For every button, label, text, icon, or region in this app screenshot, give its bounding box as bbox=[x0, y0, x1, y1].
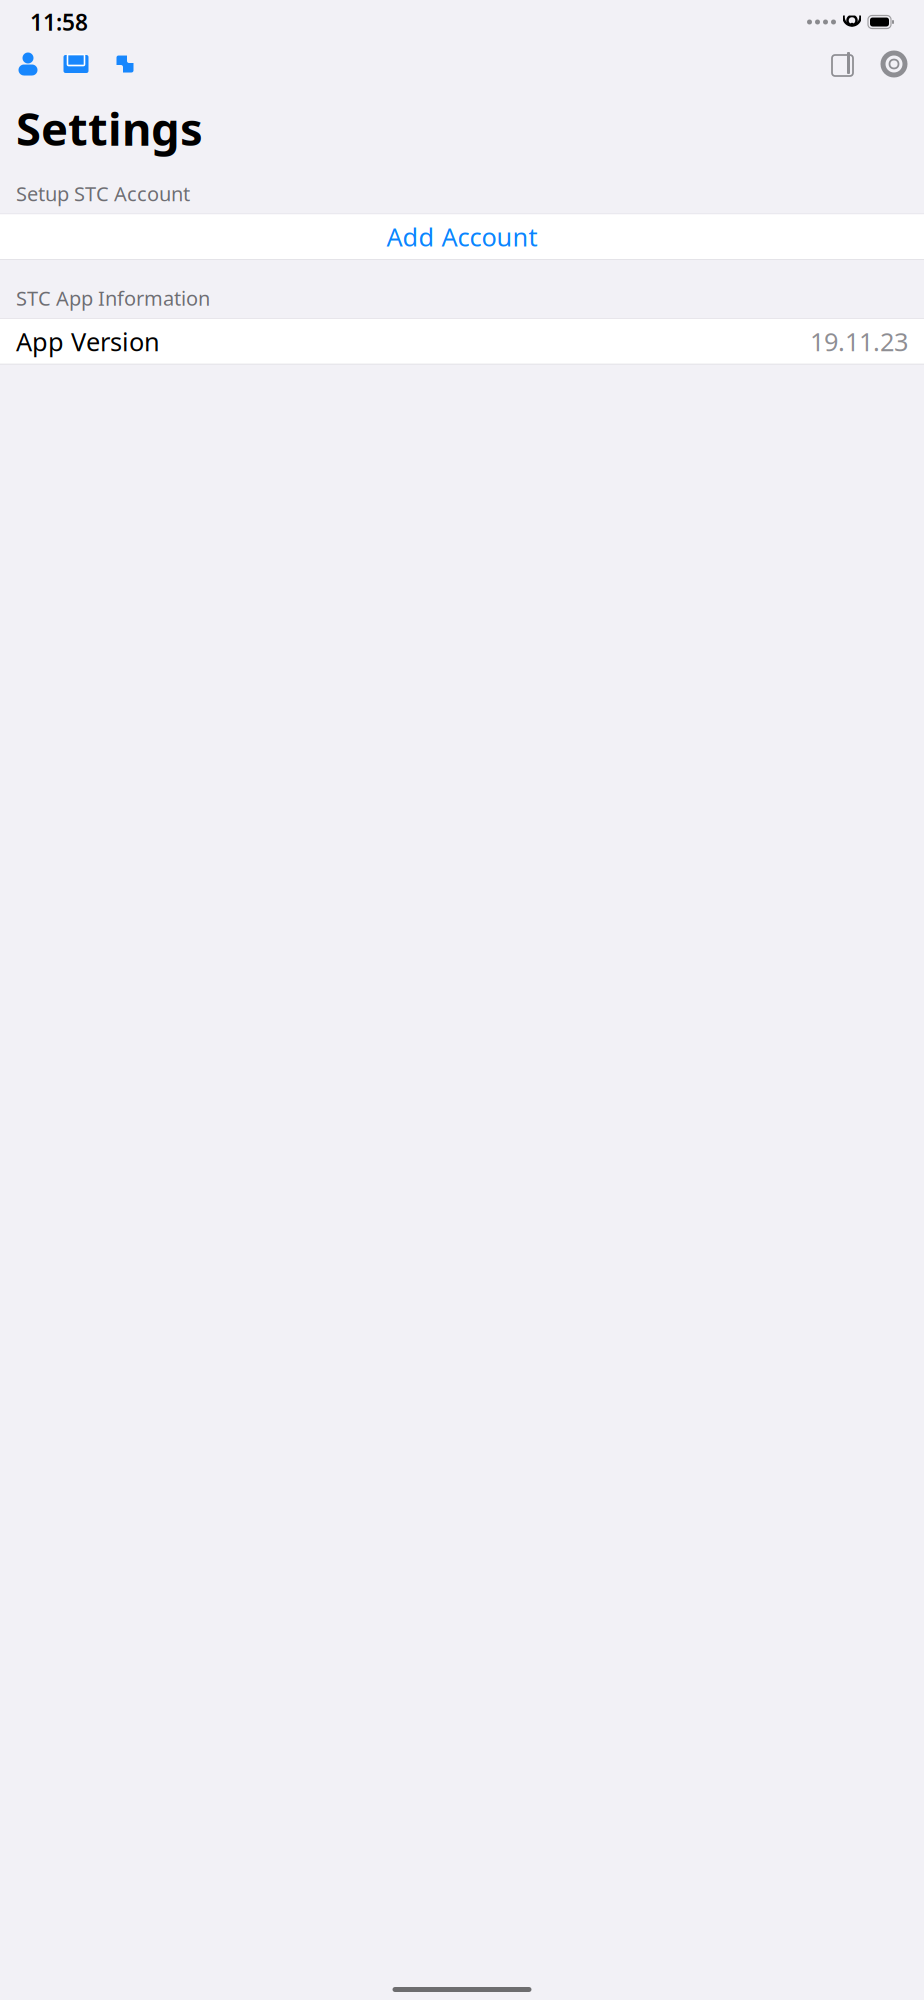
staticText: Add Account bbox=[386, 220, 537, 253]
button[interactable]: Add Account bbox=[0, 214, 924, 259]
staticText: Setup STC Account bbox=[16, 180, 190, 207]
staticText: Settings bbox=[16, 98, 203, 158]
staticText: STC App Information bbox=[16, 285, 210, 311]
button[interactable]: App Version bbox=[0, 319, 924, 364]
button[interactable]: Compose bbox=[819, 43, 869, 85]
button[interactable]: Mail bbox=[51, 44, 101, 83]
staticText: 11:58 bbox=[30, 7, 88, 37]
button[interactable]: Send bbox=[101, 44, 149, 83]
button[interactable]: Contacts bbox=[5, 44, 51, 83]
staticText: 19.11.23 bbox=[810, 324, 908, 358]
staticText: App Version bbox=[16, 324, 160, 358]
button[interactable]: Settings bbox=[869, 43, 919, 85]
